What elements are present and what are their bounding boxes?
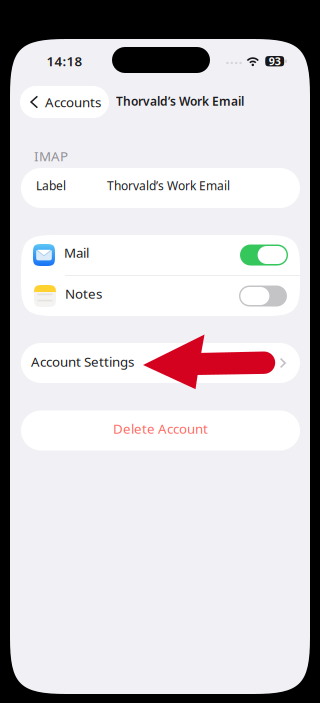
button[interactable]: Accounts bbox=[20, 86, 109, 118]
staticText: Accounts bbox=[45, 93, 101, 111]
staticText: 14:18 bbox=[46, 52, 82, 70]
staticText: Account Settings bbox=[31, 353, 134, 370]
button[interactable]: Label bbox=[21, 168, 300, 208]
staticText: 93 bbox=[269, 54, 281, 68]
staticText: Thorvald’s Work Email bbox=[107, 177, 230, 193]
staticText: Label bbox=[36, 177, 66, 193]
staticText: Thorvald’s Work Email bbox=[116, 93, 244, 109]
button[interactable]: Delete Account bbox=[21, 410, 300, 450]
staticText: Delete Account bbox=[113, 420, 208, 437]
staticText: IMAP bbox=[34, 147, 68, 165]
staticText: Notes bbox=[65, 285, 102, 302]
staticText: Mail bbox=[64, 244, 89, 261]
button[interactable]: Account Settings bbox=[21, 343, 300, 383]
